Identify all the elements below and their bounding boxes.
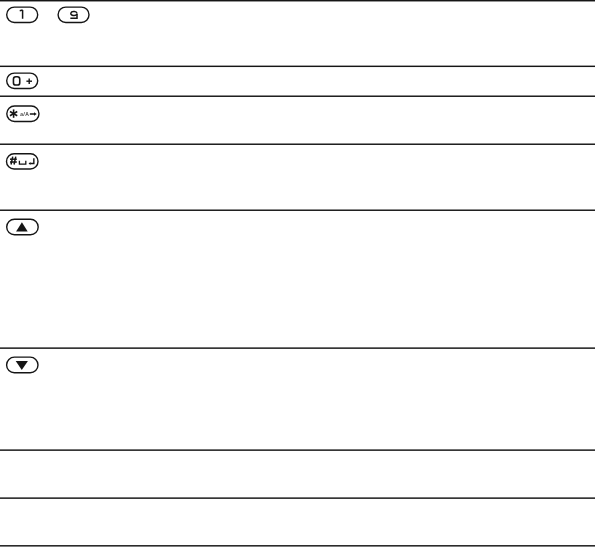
- button[interactable]: Star key, letter case: [7, 106, 39, 122]
- button[interactable]: Up key: [7, 219, 39, 235]
- button[interactable]: Down key: [7, 357, 38, 373]
- button[interactable]: Key 0 and plus: [0, 66, 595, 96]
- button[interactable]: Down navigation key: [0, 348, 595, 450]
- button[interactable]: Key 0 plus: [7, 73, 38, 88]
- button[interactable]: Hash key, space and new line: [0, 144, 595, 210]
- button[interactable]: Table row: [0, 498, 595, 546]
- button[interactable]: Keys 1 to 9: [0, 0, 595, 66]
- button[interactable]: Table row: [0, 450, 595, 498]
- button[interactable]: Key 1: [7, 7, 38, 22]
- button[interactable]: Key 9: [58, 7, 89, 22]
- button[interactable]: Up navigation key: [0, 210, 595, 348]
- button[interactable]: Hash key, space: [7, 154, 39, 169]
- button[interactable]: Star key, switch letter case: [0, 96, 595, 144]
